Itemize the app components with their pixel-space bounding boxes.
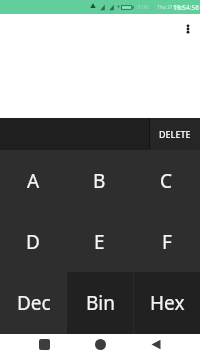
staticText: A: [27, 168, 40, 194]
button[interactable]: D: [0, 211, 66, 272]
staticText: C: [160, 168, 173, 194]
staticText: Bin: [86, 290, 115, 316]
button[interactable]: F: [133, 211, 200, 272]
staticText: F: [162, 229, 172, 255]
button[interactable]: A: [0, 150, 66, 211]
staticText: 19:54:56: [173, 3, 199, 12]
button[interactable]: DELETE: [150, 118, 200, 150]
staticText: E: [94, 229, 105, 255]
button[interactable]: Bin: [67, 272, 133, 334]
button[interactable]: B: [66, 150, 133, 211]
staticText: D: [26, 229, 40, 255]
button[interactable]: Recents: [28, 334, 61, 355]
staticText: Thu 21 Sep: [157, 4, 183, 11]
button[interactable]: Back: [140, 334, 172, 355]
staticText: 31%: [137, 3, 149, 11]
staticText: Dec: [17, 290, 51, 316]
button[interactable]: Home: [84, 334, 116, 355]
button[interactable]: C: [133, 150, 200, 211]
staticText: Hex: [150, 290, 185, 316]
button[interactable]: Hex: [134, 272, 200, 334]
button[interactable]: More options: [176, 17, 200, 41]
button[interactable]: E: [66, 211, 133, 272]
staticText: B: [93, 168, 106, 194]
button[interactable]: Dec: [0, 272, 67, 334]
staticText: DELETE: [159, 128, 191, 140]
